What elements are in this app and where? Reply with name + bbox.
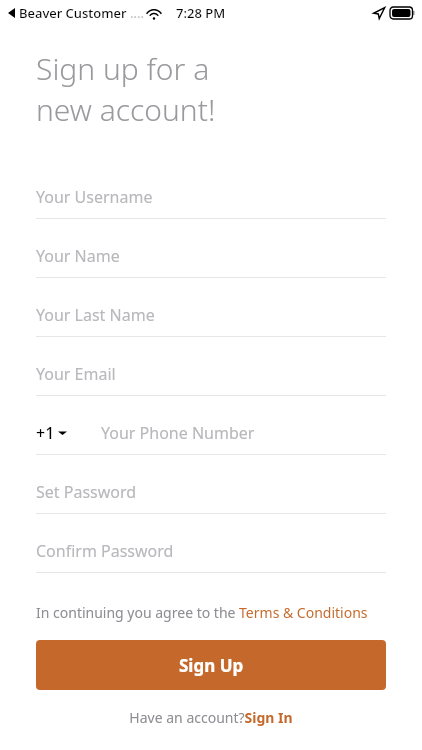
staticText: .... [130, 4, 144, 22]
button[interactable]: Sign Up [36, 640, 386, 690]
button[interactable]: Your Last Name [36, 294, 386, 353]
staticText: Beaver Customer [19, 4, 127, 22]
staticText: new account! [36, 89, 216, 130]
button[interactable]: Have an account?Sign In [36, 708, 386, 727]
staticText: Have an account?Sign In [129, 708, 293, 727]
staticText: Your Email [36, 363, 116, 385]
staticText: 7:28 PM [176, 4, 226, 22]
button[interactable]: In continuing you agree to the Terms & C… [36, 603, 386, 622]
button[interactable]: Your Phone Number [101, 422, 386, 444]
staticText: Your Last Name [36, 304, 155, 326]
staticText: Your Username [36, 186, 153, 208]
staticText: Confirm Password [36, 540, 174, 562]
button[interactable]: Your Username [36, 176, 386, 235]
staticText: +1 [36, 422, 55, 444]
staticText: Sign up for a [36, 48, 210, 89]
staticText: Set Password [36, 481, 137, 503]
staticText: Your Name [36, 245, 120, 267]
button[interactable]: Your Name [36, 235, 386, 294]
button[interactable]: Select country code [36, 422, 67, 444]
button[interactable]: Confirm Password [36, 530, 386, 589]
staticText: Your Phone Number [101, 422, 255, 444]
staticText: Sign Up [179, 654, 244, 677]
button[interactable]: Your Email [36, 353, 386, 412]
button[interactable]: Set Password [36, 471, 386, 530]
